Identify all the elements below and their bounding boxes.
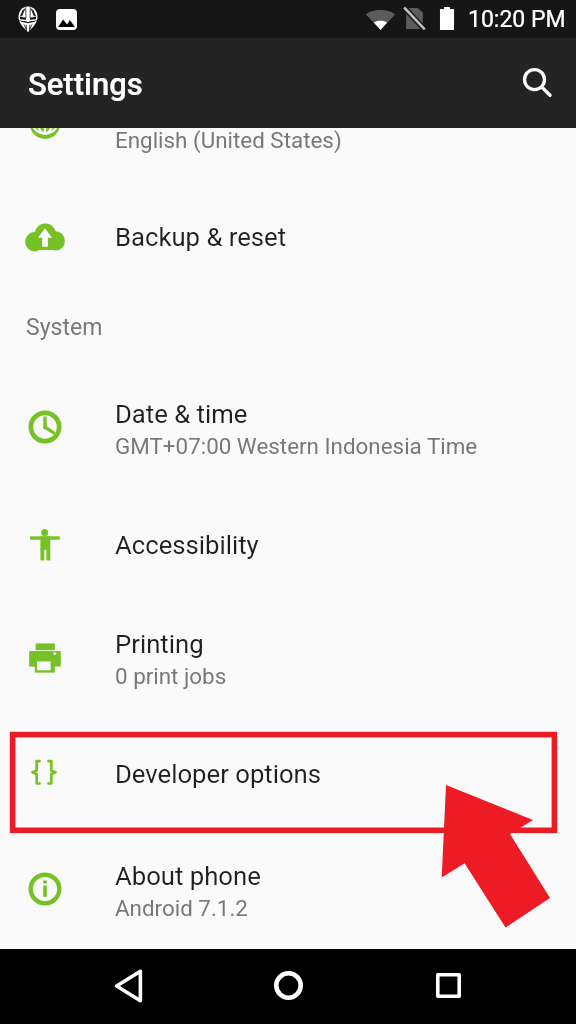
button[interactable]: Backup & reset xyxy=(0,202,576,271)
staticText: System xyxy=(26,314,103,341)
staticText: English (United States) xyxy=(115,127,342,153)
button[interactable]: Printing xyxy=(0,611,576,703)
button[interactable]: Back xyxy=(99,956,158,1015)
staticText: Date & time xyxy=(115,399,248,429)
button[interactable]: Home xyxy=(259,956,318,1015)
staticText: 0 print jobs xyxy=(115,663,227,689)
button[interactable]: English (United States) xyxy=(0,128,576,170)
button[interactable]: Accessibility xyxy=(0,510,576,579)
staticText: Backup & reset xyxy=(115,222,287,252)
staticText: About phone xyxy=(115,861,261,891)
staticText: 10:20 PM xyxy=(468,6,566,33)
button[interactable]: About phone xyxy=(0,843,576,935)
staticText: Accessibility xyxy=(115,530,259,560)
staticText: Android 7.1.2 xyxy=(115,895,248,921)
button[interactable]: Search xyxy=(510,60,556,106)
staticText: Developer options xyxy=(115,759,322,789)
button[interactable]: Developer options xyxy=(0,739,576,808)
staticText: Settings xyxy=(28,66,143,102)
button[interactable]: Date & time xyxy=(0,381,576,473)
staticText: GMT+07:00 Western Indonesia Time xyxy=(115,433,478,459)
staticText: Printing xyxy=(115,629,204,659)
button[interactable]: Recent apps xyxy=(419,956,478,1015)
